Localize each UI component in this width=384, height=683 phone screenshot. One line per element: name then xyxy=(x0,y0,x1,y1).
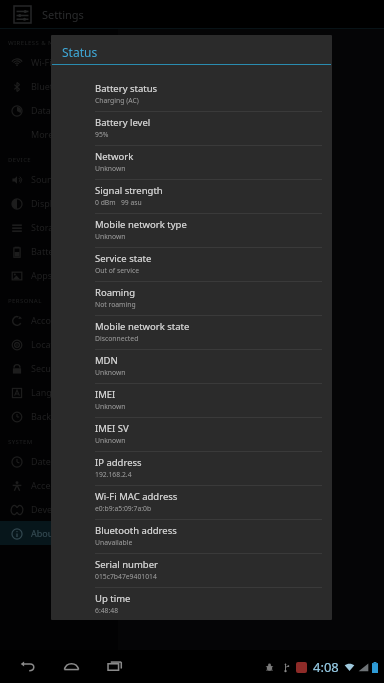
button[interactable]: Developer options xyxy=(0,497,118,521)
staticText: Unknown xyxy=(95,436,126,445)
button[interactable]: Signal strength xyxy=(51,180,332,213)
staticText: Signal strength xyxy=(95,184,163,197)
button[interactable]: Battery level xyxy=(51,112,332,145)
button[interactable]: Service state xyxy=(51,248,332,281)
button[interactable]: More... xyxy=(0,122,118,146)
button[interactable]: Roaming xyxy=(51,282,332,315)
staticText: Not roaming xyxy=(95,300,136,309)
button[interactable]: Up time xyxy=(51,588,332,620)
staticText: Data usage xyxy=(31,104,79,116)
staticText: Settings xyxy=(42,7,84,22)
staticText: Display xyxy=(31,197,62,209)
button[interactable]: IP address xyxy=(51,452,332,485)
button[interactable]: Recent apps xyxy=(98,650,132,683)
staticText: SYSTEM xyxy=(8,438,33,446)
button[interactable]: About tablet xyxy=(0,521,118,545)
button[interactable]: Storage xyxy=(0,215,118,239)
staticText: Storage xyxy=(31,221,64,233)
staticText: Battery xyxy=(31,245,62,257)
staticText: Charging (AC) xyxy=(95,96,139,105)
button[interactable]: Location xyxy=(0,332,118,356)
staticText: e0:b9:a5:09:7a:0b xyxy=(95,504,152,513)
staticText: Date & time xyxy=(31,455,82,467)
staticText: DEVICE xyxy=(8,156,32,164)
staticText: 015c7b47e9401014 xyxy=(95,572,157,581)
staticText: About tablet xyxy=(31,527,84,539)
staticText: Up time xyxy=(95,592,131,605)
staticText: Mobile network type xyxy=(95,218,187,231)
button[interactable]: Data usage xyxy=(0,98,118,122)
button[interactable]: Backup xyxy=(0,404,118,428)
staticText: Unknown xyxy=(95,368,126,377)
button[interactable]: Sound xyxy=(0,167,118,191)
staticText: Serial number xyxy=(95,558,158,571)
staticText: Out of service xyxy=(95,266,140,275)
button[interactable]: Mobile network state xyxy=(51,316,332,349)
staticText: Network xyxy=(95,150,134,163)
button[interactable]: IMEI xyxy=(51,384,332,417)
button[interactable]: Security xyxy=(0,356,118,380)
staticText: WIRELESS & NETWORKS xyxy=(8,39,84,47)
staticText: Developer options xyxy=(31,503,109,515)
staticText: Battery level xyxy=(95,116,151,129)
button[interactable]: Network xyxy=(51,146,332,179)
staticText: Location xyxy=(31,338,68,350)
staticText: Bluetooth xyxy=(31,80,73,92)
button[interactable]: Accounts xyxy=(0,308,118,332)
staticText: 4:08 xyxy=(313,658,339,676)
staticText: Security xyxy=(31,362,65,374)
staticText: Wi-Fi MAC address xyxy=(95,490,178,503)
button[interactable]: Accessibility xyxy=(0,473,118,497)
button[interactable]: IMEI SV xyxy=(51,418,332,451)
button[interactable]: Display xyxy=(0,191,118,215)
staticText: IMEI SV xyxy=(95,422,129,435)
staticText: Wi-Fi xyxy=(31,56,52,68)
button[interactable]: MDN xyxy=(51,350,332,383)
staticText: Roaming xyxy=(95,286,136,299)
staticText: Disconnected xyxy=(95,334,139,343)
button[interactable]: Battery xyxy=(0,239,118,263)
staticText: Mobile network state xyxy=(95,320,190,333)
staticText: Sound xyxy=(31,173,59,185)
staticText: 0 dBm 99 asu xyxy=(95,198,142,207)
button[interactable]: Date & time xyxy=(0,449,118,473)
button[interactable]: Apps xyxy=(0,263,118,287)
staticText: Status xyxy=(62,44,98,60)
button[interactable]: Bluetooth xyxy=(0,74,118,98)
staticText: 192.168.2.4 xyxy=(95,470,132,479)
staticText: 6:48:48 xyxy=(95,606,119,615)
staticText: Language xyxy=(31,386,74,398)
staticText: Backup xyxy=(31,410,63,422)
button[interactable]: Wi-Fi MAC address xyxy=(51,486,332,519)
staticText: PERSONAL xyxy=(8,297,42,305)
staticText: Bluetooth address xyxy=(95,524,177,537)
staticText: Unavailable xyxy=(95,538,133,547)
staticText: Apps xyxy=(31,269,53,281)
button[interactable]: Bluetooth address xyxy=(51,520,332,553)
staticText: Unknown xyxy=(95,402,126,411)
button[interactable]: System status xyxy=(265,658,384,676)
staticText: Accounts xyxy=(31,314,70,326)
staticText: Battery status xyxy=(95,82,158,95)
button[interactable]: Mobile network type xyxy=(51,214,332,247)
button[interactable]: Language xyxy=(0,380,118,404)
button[interactable]: Battery status xyxy=(51,78,332,111)
staticText: IP address xyxy=(95,456,142,469)
staticText: IMEI xyxy=(95,388,116,401)
button[interactable]: Serial number xyxy=(51,554,332,587)
staticText: MDN xyxy=(95,354,118,367)
staticText: 95% xyxy=(95,130,109,139)
staticText: Service state xyxy=(95,252,152,265)
staticText: More... xyxy=(31,128,61,140)
staticText: Unknown xyxy=(95,232,126,241)
button[interactable]: Back xyxy=(10,650,44,683)
button[interactable]: Wi-Fi xyxy=(0,50,118,74)
button[interactable]: Home xyxy=(54,650,88,683)
staticText: Unknown xyxy=(95,164,126,173)
staticText: Accessibility xyxy=(31,479,82,491)
